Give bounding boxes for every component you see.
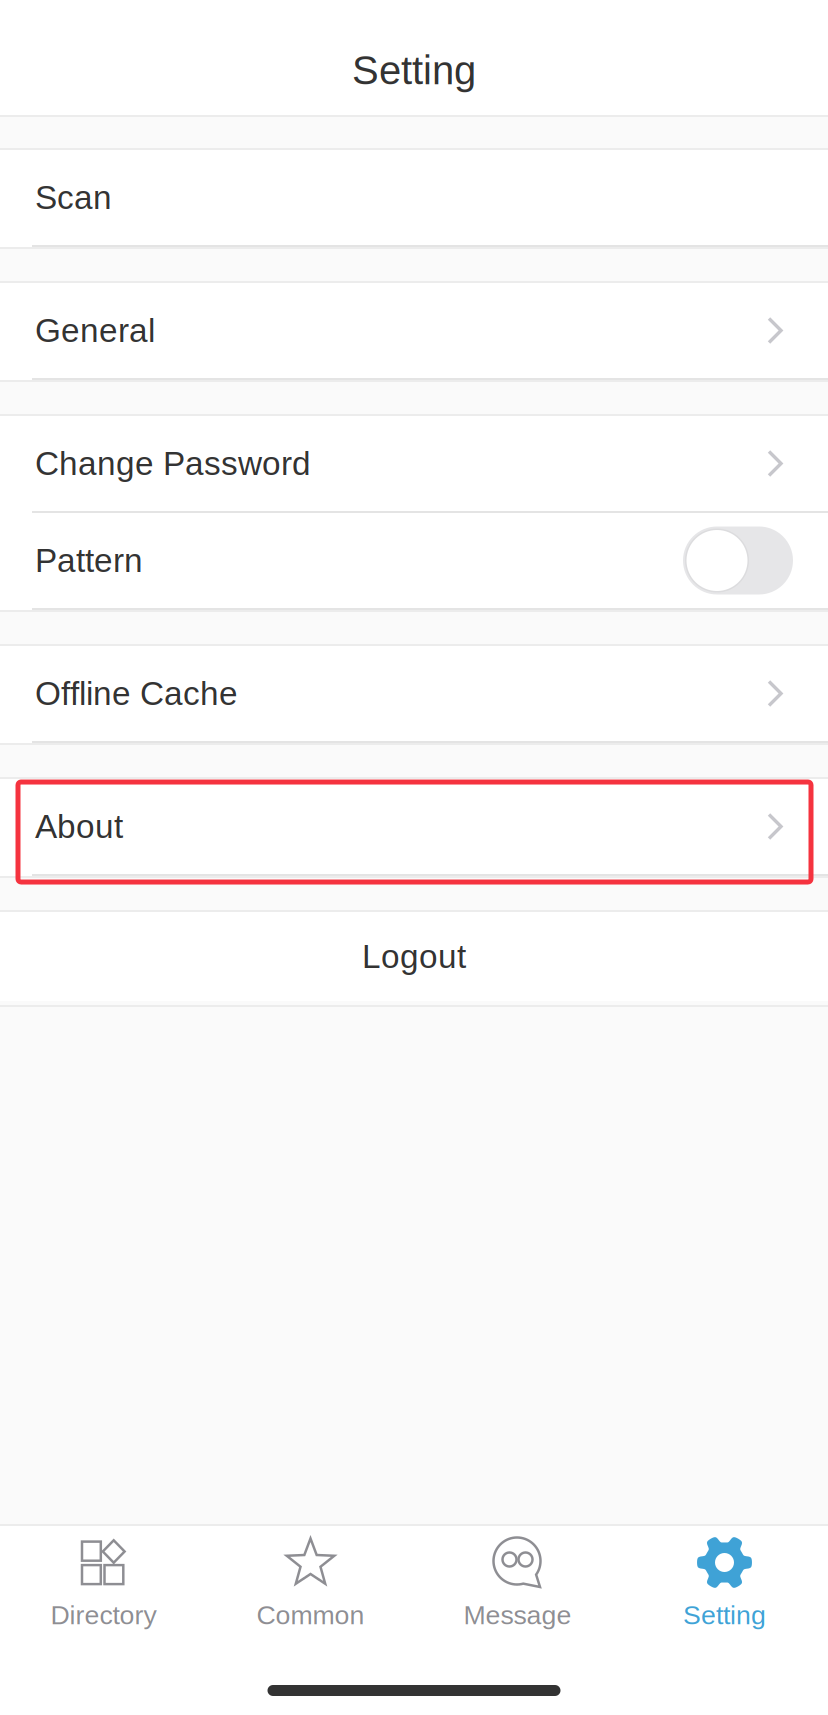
button[interactable]: Pattern: [0, 513, 828, 610]
staticText: Setting: [683, 1600, 766, 1630]
staticText: Setting: [352, 48, 476, 93]
staticText: Pattern: [35, 542, 143, 579]
button[interactable]: Change Password: [0, 416, 828, 513]
staticText: Message: [463, 1600, 571, 1630]
button[interactable]: Scan: [0, 150, 828, 247]
button[interactable]: Setting: [621, 1526, 828, 1647]
staticText: Change Password: [35, 445, 311, 482]
button[interactable]: About: [0, 779, 828, 876]
staticText: Offline Cache: [35, 675, 238, 712]
button[interactable]: Logout: [0, 912, 828, 1001]
button[interactable]: Message: [414, 1526, 621, 1647]
button[interactable]: General: [0, 283, 828, 380]
staticText: About: [35, 808, 123, 845]
staticText: Directory: [50, 1600, 156, 1630]
staticText: General: [35, 312, 155, 349]
staticText: Scan: [35, 179, 112, 216]
button[interactable]: Offline Cache: [0, 646, 828, 743]
staticText: Common: [256, 1600, 364, 1630]
button[interactable]: Common: [207, 1526, 414, 1647]
button[interactable]: Directory: [0, 1526, 207, 1647]
staticText: Logout: [362, 938, 466, 975]
